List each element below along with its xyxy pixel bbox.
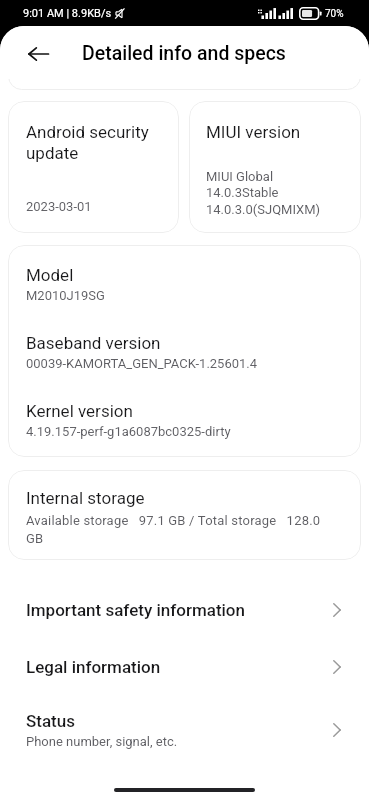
- staticText: 4.19.157-perf-g1a6087bc0325-dirty: [26, 424, 231, 439]
- staticText: Phone number, signal, etc.: [26, 734, 178, 749]
- staticText: Detailed info and specs: [82, 42, 286, 65]
- staticText: 00039-KAMORTA_GEN_PACK-1.25601.4: [26, 356, 258, 371]
- staticText: 2023-03-01: [26, 199, 92, 214]
- button[interactable]: Model: [8, 245, 361, 457]
- staticText: MIUI version: [206, 122, 301, 142]
- staticText: MIUI Global 14.0.3Stable 14.0.3.0(SJQMIX…: [206, 169, 321, 217]
- staticText: Status: [26, 711, 75, 731]
- button[interactable]: Back: [16, 32, 60, 76]
- staticText: M2010J19SG: [26, 288, 105, 303]
- staticText: Kernel version: [26, 401, 133, 421]
- button[interactable]: Status: [0, 695, 369, 765]
- staticText: Internal storage: [26, 488, 145, 508]
- staticText: Baseband version: [26, 333, 161, 353]
- button[interactable]: Android security update: [8, 101, 179, 233]
- staticText: Available storage 97.1 GB / Total storag…: [26, 513, 321, 546]
- staticText: Important safety information: [26, 600, 245, 620]
- staticText: Legal information: [26, 657, 161, 677]
- button[interactable]: Internal storage: [8, 470, 361, 560]
- staticText: Android security update: [26, 122, 171, 163]
- button[interactable]: Legal information: [0, 638, 369, 695]
- staticText: Model: [26, 265, 74, 285]
- staticText: 9:01 AM | 8.9KB/s: [23, 7, 112, 20]
- staticText: 70%: [325, 8, 344, 20]
- button[interactable]: Important safety information: [0, 581, 369, 638]
- button[interactable]: MIUI version: [189, 101, 361, 233]
